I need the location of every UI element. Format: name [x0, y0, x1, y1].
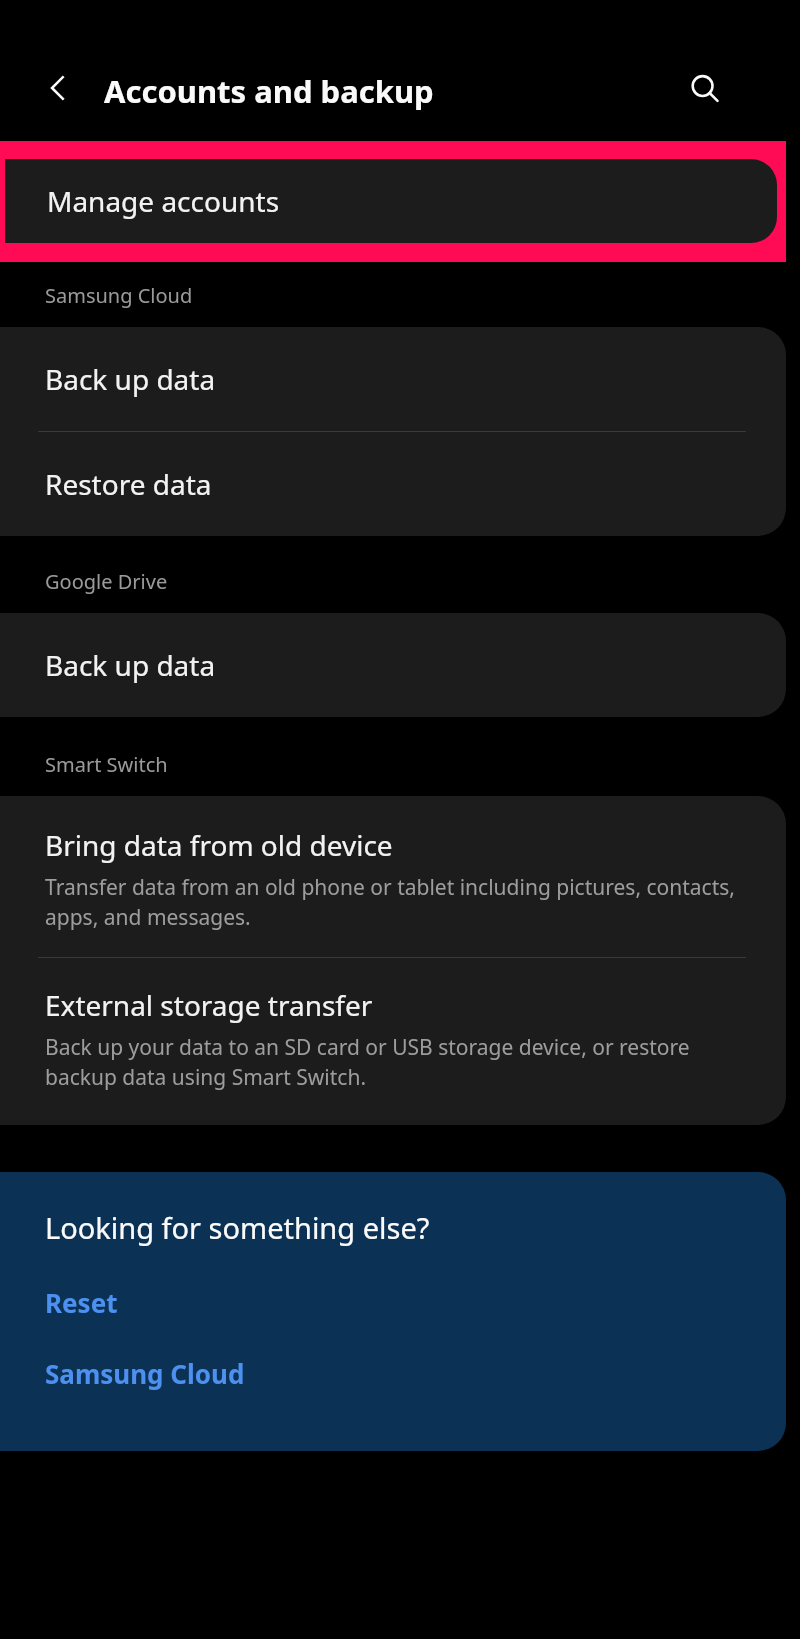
- staticText: Accounts and backup: [104, 70, 434, 112]
- staticText: Manage accounts: [47, 182, 280, 220]
- staticText: Google Drive: [45, 568, 168, 595]
- button[interactable]: Back up data: [0, 613, 786, 717]
- staticText: Samsung Cloud: [45, 282, 193, 309]
- button[interactable]: Restore data: [0, 432, 786, 536]
- staticText: Transfer data from an old phone or table…: [45, 873, 738, 931]
- staticText: Back up data: [45, 360, 216, 398]
- staticText: Restore data: [45, 465, 212, 503]
- button[interactable]: Back up data: [0, 327, 786, 431]
- staticText: Back up your data to an SD card or USB s…: [45, 1033, 738, 1091]
- staticText: Smart Switch: [45, 751, 168, 778]
- staticText: Looking for something else?: [45, 1208, 430, 1247]
- button[interactable]: Manage accounts: [5, 159, 777, 243]
- button[interactable]: Looking for something else?: [0, 1172, 786, 1451]
- button[interactable]: Bring data from old device: [0, 796, 786, 957]
- staticText: Bring data from old device: [45, 826, 393, 864]
- staticText: Back up data: [45, 646, 216, 684]
- staticText: Reset: [45, 1285, 118, 1320]
- button[interactable]: Back: [36, 66, 80, 110]
- button[interactable]: Reset: [0, 1281, 786, 1324]
- staticText: External storage transfer: [45, 986, 373, 1024]
- button[interactable]: Samsung Cloud: [0, 1352, 786, 1395]
- button[interactable]: Search: [682, 66, 728, 112]
- staticText: Samsung Cloud: [45, 1356, 245, 1391]
- button[interactable]: External storage transfer: [0, 958, 786, 1125]
